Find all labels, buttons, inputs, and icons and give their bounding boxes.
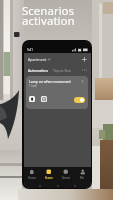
staticText: Lamp on when movement detected [29,79,79,84]
staticText: Smart [62,176,70,180]
button[interactable]: Apartment [24,53,91,65]
button[interactable]: Automation [28,68,48,73]
button[interactable]: Toggle scenario [74,97,85,103]
button[interactable]: Lamp on when movement detected [26,76,88,109]
button[interactable]: More options [82,68,87,72]
other: Open scenario [81,80,84,83]
button[interactable]: Home [24,169,40,180]
staticText: 1 task [29,84,37,88]
staticText: 9:41 [27,48,33,52]
button[interactable]: Add device [82,57,87,62]
button[interactable]: Tap-to-Run [53,68,71,73]
staticText: Home [28,176,36,180]
staticText: Me [80,176,85,180]
staticText: Scene [45,176,53,180]
button[interactable]: Smart [57,169,74,180]
staticText: Apartment [28,57,47,62]
staticText: Scenarios activation [22,3,75,28]
button[interactable]: Scene [40,169,57,180]
button[interactable]: Me [74,169,91,180]
